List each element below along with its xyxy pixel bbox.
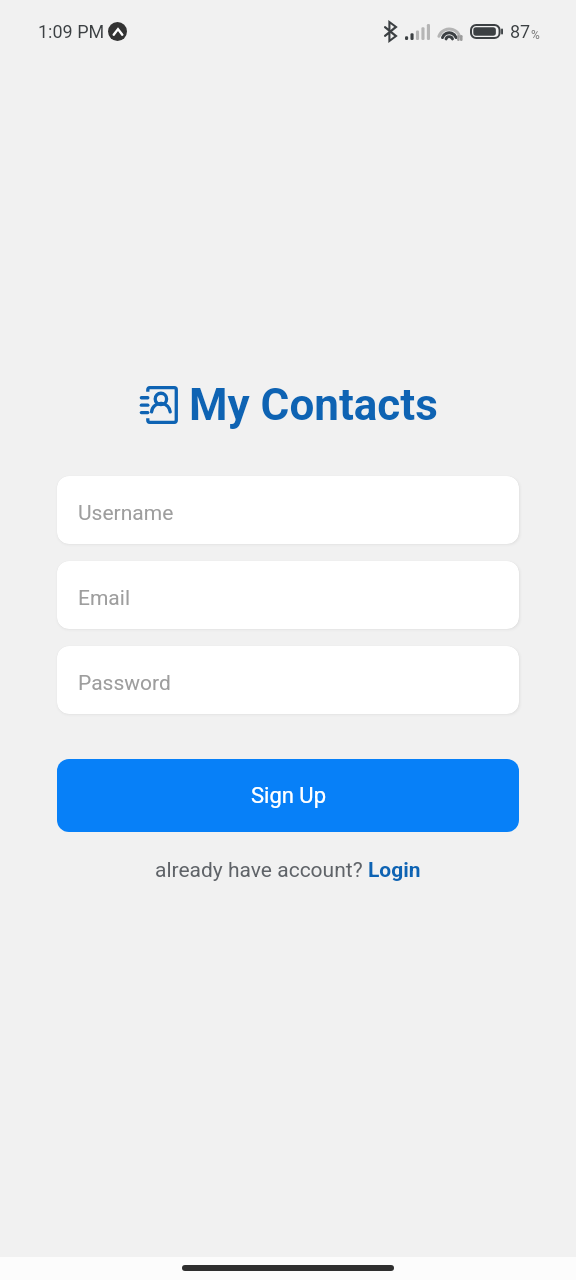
staticText: Username xyxy=(78,501,174,526)
button[interactable]: Email xyxy=(57,561,519,629)
staticText: Password xyxy=(78,671,171,696)
staticText: Login xyxy=(368,858,421,883)
staticText: 87 xyxy=(510,21,531,42)
staticText: 1:09 PM xyxy=(38,21,105,42)
button[interactable]: Login xyxy=(368,858,421,883)
button[interactable]: Username xyxy=(57,476,519,544)
staticText: Sign Up xyxy=(251,783,326,809)
button[interactable]: Password xyxy=(57,646,519,714)
staticText: My Contacts xyxy=(189,379,438,431)
staticText: Email xyxy=(78,586,130,611)
staticText: % xyxy=(531,28,540,42)
staticText: already have account? xyxy=(155,858,368,883)
button[interactable]: Sign Up xyxy=(57,759,519,832)
